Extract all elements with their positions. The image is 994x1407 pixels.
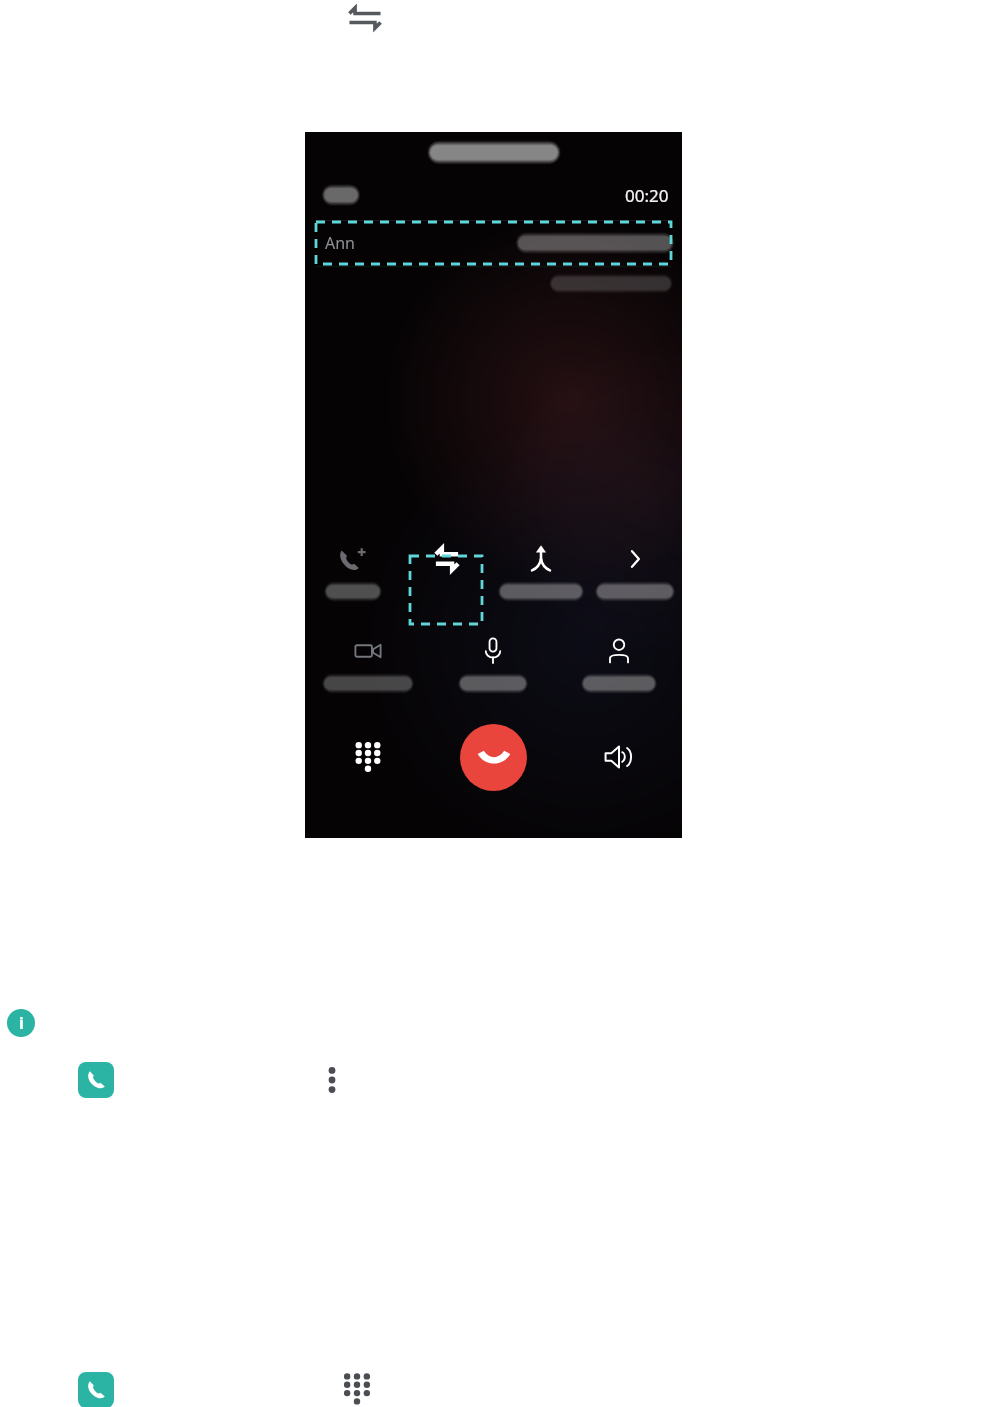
button[interactable]: Add call — [305, 532, 400, 624]
staticText: 00:20 — [625, 184, 669, 207]
button[interactable]: Swap calls — [344, 4, 386, 32]
button[interactable]: Video call — [305, 624, 430, 702]
button[interactable]: More options — [323, 1065, 341, 1095]
button[interactable]: Phone — [78, 1372, 114, 1407]
button[interactable]: Swap calls — [400, 532, 494, 624]
button[interactable]: End call — [460, 724, 527, 791]
button[interactable]: Ann — [305, 222, 682, 264]
button[interactable]: Phone — [78, 1062, 114, 1098]
button[interactable]: Dial pad — [342, 731, 394, 783]
button[interactable]: Mute — [430, 624, 556, 702]
button[interactable]: Dial pad — [340, 1372, 374, 1406]
button[interactable]: Contacts — [556, 624, 682, 702]
staticText: Ann — [325, 232, 356, 254]
button[interactable]: Merge calls — [494, 532, 588, 624]
button[interactable]: Info — [7, 1009, 35, 1037]
button[interactable]: More — [588, 532, 682, 624]
staticText: i — [19, 1012, 24, 1034]
button[interactable]: Speaker — [593, 731, 645, 783]
